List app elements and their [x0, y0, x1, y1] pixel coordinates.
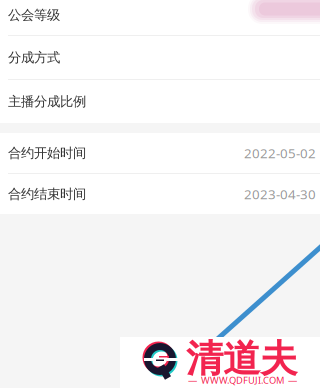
staticText: 公会等级 [8, 7, 60, 23]
button[interactable]: 分成方式 [0, 36, 320, 79]
staticText: 合约开始时间 [8, 145, 86, 161]
button[interactable]: 合约开始时间 [0, 133, 320, 173]
staticText: 清道夫 [186, 336, 297, 382]
staticText: 合约结束时间 [8, 186, 86, 202]
button[interactable]: 合约结束时间 [0, 174, 320, 214]
staticText: 2022-05-02 [244, 144, 316, 162]
button[interactable]: 主播分成比例 [0, 80, 320, 123]
staticText: 2023-04-30 [244, 185, 316, 203]
button[interactable]: 公会等级 [0, 0, 320, 35]
staticText: 分成方式 [8, 49, 60, 66]
staticText: — WWW.QDFUJI.COM — [188, 374, 297, 386]
staticText: 主播分成比例 [8, 93, 86, 110]
